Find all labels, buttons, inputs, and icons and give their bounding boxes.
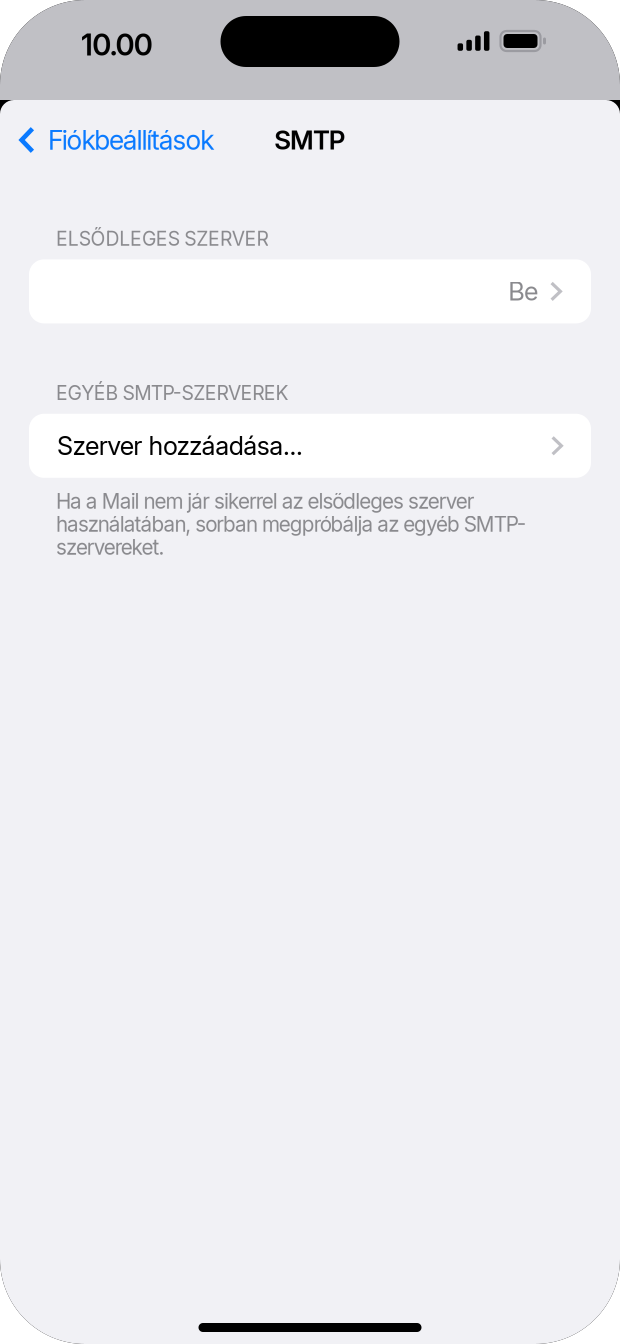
button[interactable]: Fiókbeállítások <box>0 114 620 166</box>
button[interactable]: Szerver hozzáadása... <box>29 414 591 478</box>
staticText: 10.00 <box>81 27 153 62</box>
button[interactable]: Be <box>29 259 591 323</box>
staticText: Szerver hozzáadása... <box>57 430 303 461</box>
staticText: SMTP <box>274 124 346 156</box>
staticText: Fiókbeállítások <box>48 124 214 156</box>
staticText: ELSŐDLEGES SZERVER <box>56 227 268 250</box>
staticText: EGYÉB SMTP-SZERVEREK <box>56 381 288 405</box>
staticText: Be <box>508 276 538 307</box>
staticText: Ha a Mail nem jár sikerrel az elsődleges… <box>56 489 526 560</box>
